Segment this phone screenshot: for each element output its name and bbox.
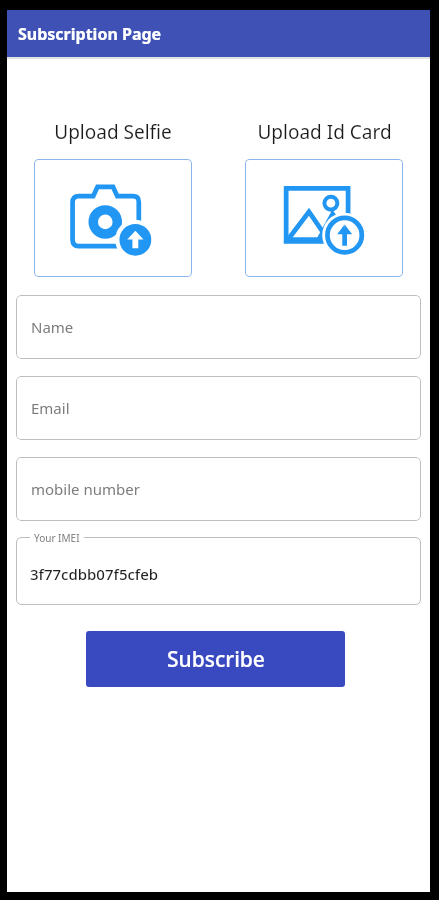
button[interactable]: Your IMEI: [16, 537, 421, 605]
staticText: Upload Id Card: [257, 119, 392, 145]
staticText: Subscription Page: [18, 23, 162, 45]
button[interactable]: Upload Id Card: [245, 159, 403, 277]
button[interactable]: Email: [16, 376, 421, 440]
button[interactable]: Subscribe: [86, 631, 345, 687]
staticText: Upload Selfie: [54, 119, 172, 145]
staticText: Your IMEI: [34, 531, 80, 545]
staticText: Name: [31, 317, 74, 337]
button[interactable]: mobile number: [16, 457, 421, 521]
staticText: mobile number: [31, 479, 140, 499]
staticText: 3f77cdbb07f5cfeb: [30, 564, 159, 584]
staticText: Subscribe: [167, 645, 265, 674]
staticText: Email: [31, 398, 70, 418]
button[interactable]: Name: [16, 295, 421, 359]
button[interactable]: Subscription Page: [7, 10, 430, 57]
button[interactable]: Upload Selfie: [34, 159, 192, 277]
